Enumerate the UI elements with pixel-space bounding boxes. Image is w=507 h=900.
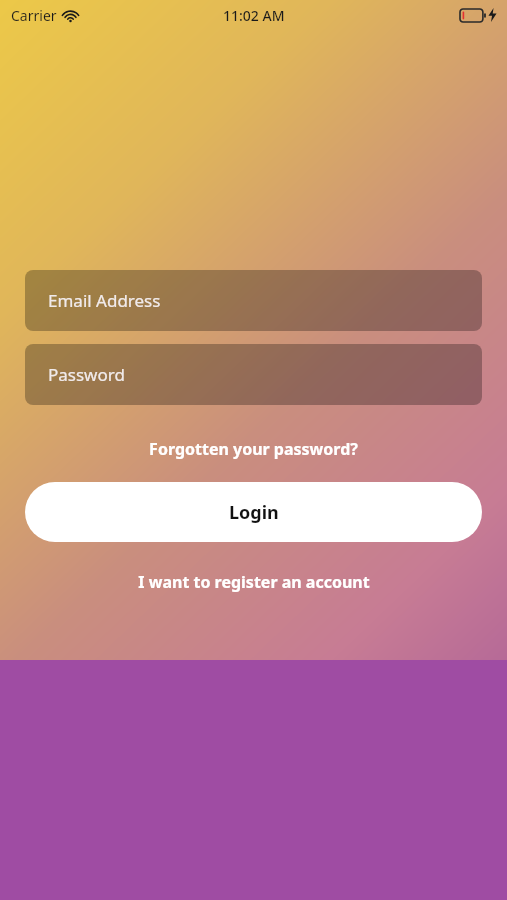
button[interactable]: Email Address <box>25 270 482 331</box>
staticText: Login <box>229 500 279 525</box>
button[interactable]: Password <box>25 344 482 405</box>
button[interactable]: I want to register an account <box>0 564 507 600</box>
staticText: Email Address <box>48 289 161 312</box>
staticText: I want to register an account <box>138 571 370 593</box>
staticText: 11:02 AM <box>223 6 285 25</box>
staticText: Password <box>48 363 125 386</box>
staticText: Forgotten your password? <box>149 438 358 460</box>
button[interactable]: Forgotten your password? <box>0 431 507 467</box>
button[interactable]: Login <box>25 482 482 542</box>
staticText: Carrier <box>11 6 57 25</box>
